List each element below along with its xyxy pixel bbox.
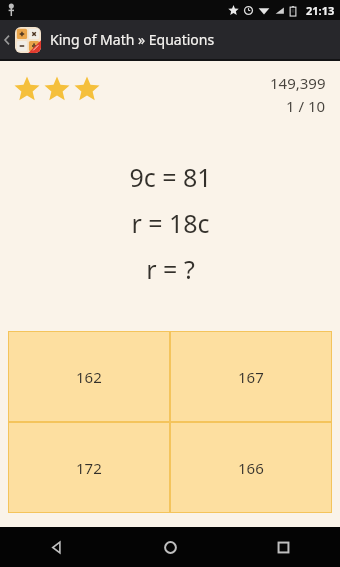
button[interactable]: King of Math » Equations xyxy=(0,20,340,59)
button[interactable]: Back xyxy=(0,527,114,567)
staticText: 21:13 xyxy=(306,3,335,18)
staticText: 172 xyxy=(76,458,102,478)
staticText: 149,399 xyxy=(270,73,326,93)
staticText: 166 xyxy=(238,458,264,478)
button[interactable]: 166 xyxy=(171,423,331,512)
button[interactable]: Home xyxy=(114,527,227,567)
staticText: r = ? xyxy=(146,252,195,286)
button[interactable]: Recent apps xyxy=(227,527,340,567)
staticText: r = 18c xyxy=(131,206,210,240)
staticText: King of Math » Equations xyxy=(50,30,215,49)
staticText: 167 xyxy=(238,367,264,387)
staticText: 1 / 10 xyxy=(286,96,326,116)
staticText: 162 xyxy=(76,367,102,387)
button[interactable]: 167 xyxy=(171,332,331,421)
button[interactable]: 172 xyxy=(9,423,169,512)
staticText: 9c = 81 xyxy=(129,160,212,194)
button[interactable]: 162 xyxy=(9,332,169,421)
